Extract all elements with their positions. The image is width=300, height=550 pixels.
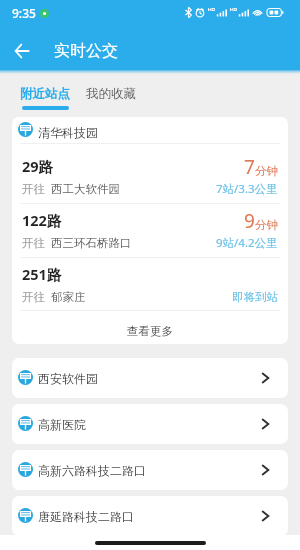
staticText: 附近站点 [20, 86, 70, 102]
staticText: 开往 [22, 182, 45, 196]
button[interactable]: 高新医院 [12, 404, 288, 444]
staticText: 9站/4.2公里 [216, 235, 278, 251]
button[interactable]: 高新六路科技二路口 [12, 450, 288, 490]
staticText: 开往 [22, 236, 45, 250]
button[interactable]: 122路 [12, 204, 288, 257]
staticText: 分钟 [255, 218, 278, 232]
button[interactable]: 251路 [12, 258, 288, 310]
button[interactable]: 清华科技园 [12, 117, 288, 143]
staticText: 西安软件园 [38, 371, 98, 386]
staticText: 查看更多 [127, 324, 173, 338]
staticText: 分钟 [255, 164, 278, 178]
button[interactable]: 唐延路科技二路口 [12, 496, 288, 536]
button[interactable]: 西安软件园 [12, 358, 288, 398]
staticText: 实时公交 [54, 41, 118, 61]
staticText: 唐延路科技二路口 [38, 509, 134, 524]
button[interactable]: 我的收藏 [78, 70, 144, 117]
staticText: 西三环石桥路口 [51, 236, 132, 250]
staticText: 我的收藏 [86, 86, 136, 102]
button[interactable]: 29路 [12, 144, 288, 203]
staticText: 开往 [22, 290, 45, 304]
staticText: 29路 [22, 156, 54, 176]
staticText: 高新六路科技二路口 [38, 463, 146, 478]
staticText: 7 [244, 154, 255, 180]
button[interactable]: 查看更多 [12, 311, 288, 344]
staticText: 9:35 [12, 5, 36, 21]
staticText: 7站/3.3公里 [216, 181, 278, 197]
staticText: 清华科技园 [38, 125, 98, 140]
staticText: 122路 [22, 210, 62, 230]
button[interactable]: 附近站点 [12, 70, 78, 117]
staticText: 西工大软件园 [51, 182, 120, 196]
button[interactable]: Back [6, 35, 38, 67]
staticText: 9 [244, 208, 255, 234]
staticText: 高新医院 [38, 417, 86, 432]
staticText: 251路 [22, 264, 62, 284]
staticText: 郁家庄 [51, 290, 86, 304]
staticText: 即将到站 [232, 290, 278, 304]
